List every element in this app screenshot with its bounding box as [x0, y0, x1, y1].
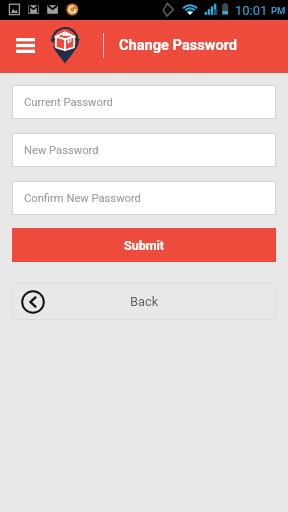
button[interactable]: Back [12, 283, 276, 320]
staticText: Confirm New Password [24, 192, 141, 205]
staticText: Current Password [24, 96, 113, 109]
staticText: Submit [124, 238, 165, 253]
staticText: Back [130, 294, 159, 309]
button[interactable]: New Password [12, 133, 276, 167]
button[interactable]: Current Password [12, 85, 276, 119]
button[interactable]: Submit [12, 228, 276, 262]
staticText: 10:01 [235, 3, 268, 18]
button[interactable]: Confirm New Password [12, 181, 276, 215]
staticText: New Password [24, 144, 99, 157]
button[interactable]: App logo [48, 26, 82, 65]
staticText: PM [271, 5, 286, 16]
staticText: Change Password [119, 36, 238, 53]
button[interactable]: Open navigation menu [11, 33, 39, 58]
